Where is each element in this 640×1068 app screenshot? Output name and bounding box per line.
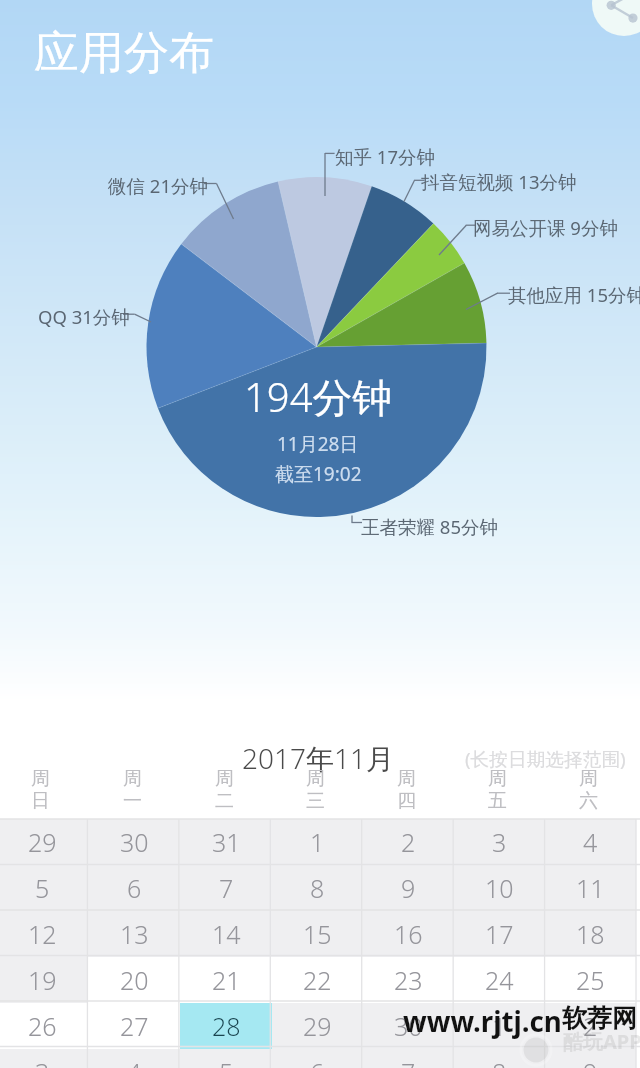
staticText: 6 (127, 871, 142, 905)
staticText: 微信 21分钟 (108, 173, 208, 198)
staticText: 5 (35, 871, 50, 905)
staticText: 24 (485, 963, 514, 997)
button[interactable]: 7 (180, 865, 272, 911)
staticText: 4 (583, 825, 598, 859)
staticText: 周 三 (306, 767, 325, 813)
staticText: 3 (492, 825, 507, 859)
staticText: 王者荣耀 85分钟 (361, 514, 498, 539)
staticText: 18 (576, 917, 605, 951)
button[interactable]: 6 (272, 1049, 363, 1068)
button[interactable]: 8 (454, 1049, 545, 1068)
button[interactable]: 13 (88, 911, 180, 957)
button[interactable]: 14 (180, 911, 272, 957)
button[interactable]: 3 (0, 1049, 88, 1068)
staticText: 6 (310, 1055, 325, 1068)
button[interactable]: 9 (545, 1049, 636, 1068)
button[interactable]: 12 (0, 911, 88, 957)
button[interactable]: 5 (0, 865, 88, 911)
staticText: 15 (303, 917, 332, 951)
button[interactable]: 5 (180, 1049, 272, 1068)
staticText: 13 (120, 917, 149, 951)
button[interactable]: 19 (0, 957, 88, 1003)
button[interactable]: 30 (88, 819, 180, 865)
staticText: 17 (485, 917, 514, 951)
staticText: 4 (127, 1055, 142, 1068)
staticText: 16 (394, 917, 423, 951)
staticText: 软荐网 (562, 1003, 637, 1034)
button[interactable]: 15 (272, 911, 363, 957)
staticText: 网易公开课 9分钟 (473, 215, 618, 240)
button[interactable]: 11 (545, 865, 636, 911)
staticText: 周 日 (31, 767, 50, 813)
button[interactable]: 18 (545, 911, 636, 957)
staticText: 23 (394, 963, 423, 997)
button[interactable]: 28 (180, 1003, 272, 1049)
staticText: 7 (401, 1055, 416, 1068)
button[interactable]: 20 (88, 957, 180, 1003)
staticText: 11月28日 (277, 431, 359, 457)
button[interactable]: 16 (363, 911, 454, 957)
staticText: 2 (583, 1009, 598, 1043)
button[interactable]: 1 (454, 1003, 545, 1049)
button[interactable]: 21 (180, 957, 272, 1003)
staticText: 8 (492, 1055, 507, 1068)
button[interactable]: 24 (454, 957, 545, 1003)
staticText: 29 (28, 825, 57, 859)
staticText: 25 (576, 963, 605, 997)
staticText: 酷玩APP (563, 1028, 640, 1055)
button[interactable]: 8 (272, 865, 363, 911)
staticText: 194分钟 (244, 369, 393, 424)
staticText: 29 (303, 1009, 332, 1043)
button[interactable]: 9 (363, 865, 454, 911)
staticText: 9 (583, 1055, 598, 1068)
staticText: 8 (310, 871, 325, 905)
button[interactable]: 27 (88, 1003, 180, 1049)
button[interactable]: 29 (0, 819, 88, 865)
staticText: 30 (394, 1009, 423, 1043)
staticText: QQ 31分钟 (38, 304, 130, 329)
staticText: 2017年11月 (242, 739, 394, 777)
staticText: 截至19:02 (275, 461, 362, 487)
staticText: 27 (120, 1009, 149, 1043)
button[interactable]: 6 (88, 865, 180, 911)
staticText: 1 (310, 825, 325, 859)
button[interactable]: 2 (545, 1003, 636, 1049)
button[interactable]: 25 (545, 957, 636, 1003)
staticText: 知乎 17分钟 (335, 144, 435, 169)
staticText: 周 四 (397, 767, 416, 813)
staticText: 14 (212, 917, 241, 951)
button[interactable]: 22 (272, 957, 363, 1003)
staticText: 周 一 (123, 767, 142, 813)
button[interactable]: 26 (0, 1003, 88, 1049)
staticText: 周 六 (579, 767, 598, 813)
staticText: 周 五 (488, 767, 507, 813)
staticText: 11 (576, 871, 605, 905)
button[interactable]: 23 (363, 957, 454, 1003)
button[interactable]: 2 (363, 819, 454, 865)
button[interactable]: 31 (180, 819, 272, 865)
button[interactable]: 4 (545, 819, 636, 865)
staticText: 28 (212, 1009, 241, 1043)
staticText: 抖音短视频 13分钟 (421, 169, 577, 194)
staticText: 31 (212, 825, 241, 859)
button[interactable]: 4 (88, 1049, 180, 1068)
button[interactable]: 7 (363, 1049, 454, 1068)
button[interactable]: 30 (363, 1003, 454, 1049)
button[interactable]: 17 (454, 911, 545, 957)
staticText: 7 (219, 871, 234, 905)
button[interactable]: 1 (272, 819, 363, 865)
staticText: 12 (28, 917, 57, 951)
staticText: 5 (219, 1055, 234, 1068)
staticText: 其他应用 15分钟 (508, 282, 640, 307)
staticText: 1 (492, 1009, 507, 1043)
staticText: 26 (28, 1009, 57, 1043)
button[interactable]: 29 (272, 1003, 363, 1049)
staticText: 2 (401, 825, 416, 859)
button[interactable]: 10 (454, 865, 545, 911)
staticText: 20 (120, 963, 149, 997)
staticText: 9 (401, 871, 416, 905)
staticText: 19 (28, 963, 57, 997)
button[interactable]: 3 (454, 819, 545, 865)
button[interactable]: Share (592, 0, 640, 36)
staticText: www.rjtj.cn (403, 1002, 562, 1040)
